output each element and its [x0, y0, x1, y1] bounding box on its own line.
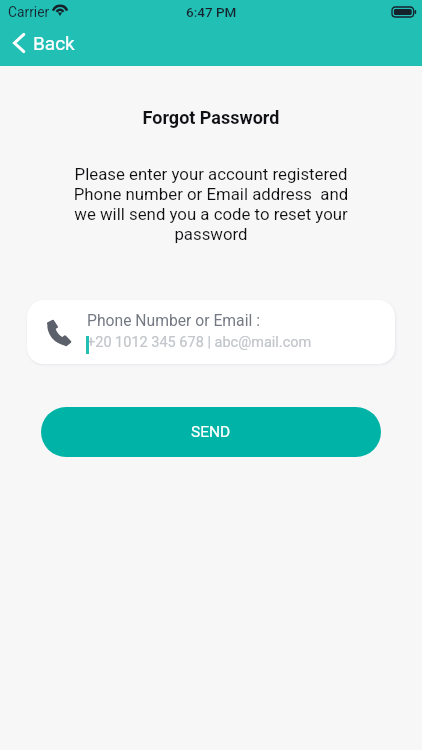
staticText: 6:47 PM — [186, 4, 237, 20]
staticText: Forgot Password — [0, 107, 422, 128]
staticText: +20 1012 345 678 | abc@mail.com — [87, 334, 312, 351]
staticText: Please enter your account registered Pho… — [0, 164, 422, 244]
staticText: Carrier — [8, 4, 50, 20]
button[interactable]: Phone Number or Email : — [27, 300, 395, 364]
staticText: Back — [33, 32, 75, 54]
button[interactable]: SEND — [41, 407, 381, 457]
staticText: SEND — [191, 423, 231, 441]
button[interactable]: Back — [0, 29, 89, 57]
staticText: Phone Number or Email : — [87, 311, 260, 329]
